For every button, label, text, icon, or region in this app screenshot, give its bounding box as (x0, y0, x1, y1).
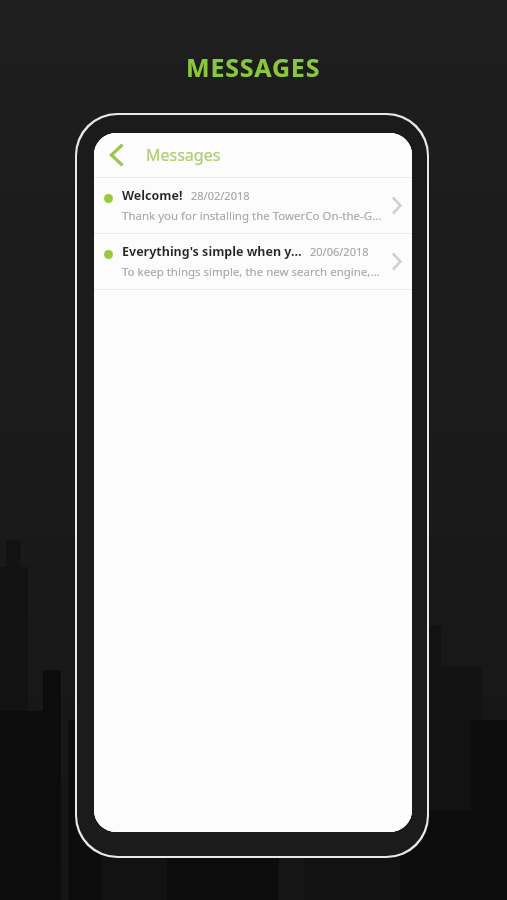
staticText: MESSAGES (186, 50, 321, 84)
button[interactable]: Welcome! (94, 178, 412, 233)
staticText: 28/02/2018 (191, 188, 250, 203)
button[interactable]: Back (94, 133, 138, 177)
staticText: Thank you for installing the TowerCo On-… (122, 208, 382, 224)
staticText: Welcome! (122, 187, 183, 204)
staticText: 20/06/2018 (310, 244, 369, 259)
staticText: To keep things simple, the new search en… (122, 264, 382, 280)
staticText: Everything's simple when y… (122, 243, 302, 260)
staticText: Messages (146, 144, 221, 166)
button[interactable]: Everything's simple when y… (94, 234, 412, 289)
